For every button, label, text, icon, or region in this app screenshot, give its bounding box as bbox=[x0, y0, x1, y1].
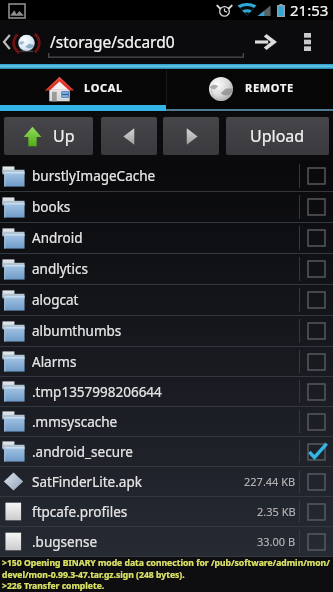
staticText: Up bbox=[53, 125, 75, 147]
button[interactable]: .android_secure bbox=[0, 437, 333, 466]
button[interactable]: LOCAL bbox=[0, 69, 166, 105]
button[interactable]: Back bbox=[101, 117, 157, 155]
staticText: 2.35 KB bbox=[257, 504, 296, 519]
button[interactable]: .tmp1357998206644 bbox=[0, 377, 333, 406]
button[interactable]: Alarms bbox=[0, 347, 333, 376]
button[interactable]: Select .android_secure bbox=[300, 437, 333, 466]
staticText: Upload bbox=[250, 125, 305, 147]
staticText: books bbox=[32, 198, 296, 216]
button[interactable]: .mmsyscache bbox=[0, 407, 333, 436]
staticText: ftpcafe.profiles bbox=[32, 503, 257, 521]
button[interactable]: Select alogcat bbox=[300, 285, 333, 315]
staticText: burstlyImageCache bbox=[32, 167, 296, 185]
button[interactable]: Upload bbox=[226, 117, 329, 155]
button[interactable]: Select SatFinderLite.apk bbox=[300, 467, 333, 496]
staticText: .bugsense bbox=[32, 533, 257, 551]
button[interactable]: burstlyImageCache bbox=[0, 161, 333, 191]
staticText: .android_secure bbox=[32, 443, 296, 461]
button[interactable]: Up one level bbox=[0, 20, 41, 64]
button[interactable]: Up bbox=[4, 117, 93, 155]
button[interactable]: Select andlytics bbox=[300, 254, 333, 284]
staticText: albumthumbs bbox=[32, 322, 296, 340]
button[interactable]: Forward bbox=[163, 117, 219, 155]
staticText: 33.00 B bbox=[257, 534, 296, 549]
button[interactable]: books bbox=[0, 192, 333, 222]
button[interactable]: More options bbox=[293, 20, 333, 64]
button[interactable]: Select burstlyImageCache bbox=[300, 161, 333, 191]
button[interactable]: /storage/sdcard0 bbox=[50, 20, 242, 64]
button[interactable]: Select Android bbox=[300, 223, 333, 253]
staticText: LOCAL bbox=[84, 80, 123, 95]
button[interactable]: REMOTE bbox=[167, 69, 333, 105]
button[interactable]: Android bbox=[0, 223, 333, 253]
button[interactable]: Select albumthumbs bbox=[300, 316, 333, 346]
staticText: Alarms bbox=[32, 353, 296, 371]
button[interactable]: Go bbox=[253, 20, 293, 64]
staticText: SatFinderLite.apk bbox=[32, 473, 244, 491]
staticText: REMOTE bbox=[245, 80, 294, 95]
button[interactable]: .bugsense bbox=[0, 527, 333, 556]
button[interactable]: andlytics bbox=[0, 254, 333, 284]
button[interactable]: Select .tmp1357998206644 bbox=[300, 377, 333, 406]
button[interactable]: Select Alarms bbox=[300, 347, 333, 376]
staticText: Android bbox=[32, 229, 296, 247]
staticText: 21:53 bbox=[290, 0, 329, 20]
staticText: alogcat bbox=[32, 291, 296, 309]
button[interactable]: Select ftpcafe.profiles bbox=[300, 497, 333, 526]
staticText: .tmp1357998206644 bbox=[32, 383, 296, 401]
staticText: 227.44 KB bbox=[244, 474, 296, 489]
staticText: .mmsyscache bbox=[32, 413, 296, 431]
staticText: /storage/sdcard0 bbox=[50, 31, 175, 52]
button[interactable]: Select .mmsyscache bbox=[300, 407, 333, 436]
staticText: >150 Opening BINARY mode data connection… bbox=[2, 557, 330, 591]
button[interactable]: SatFinderLite.apk bbox=[0, 467, 333, 496]
button[interactable]: ftpcafe.profiles bbox=[0, 497, 333, 526]
button[interactable]: Select books bbox=[300, 192, 333, 222]
button[interactable]: Select .bugsense bbox=[300, 527, 333, 556]
staticText: andlytics bbox=[32, 260, 296, 278]
button[interactable]: albumthumbs bbox=[0, 316, 333, 346]
button[interactable]: alogcat bbox=[0, 285, 333, 315]
